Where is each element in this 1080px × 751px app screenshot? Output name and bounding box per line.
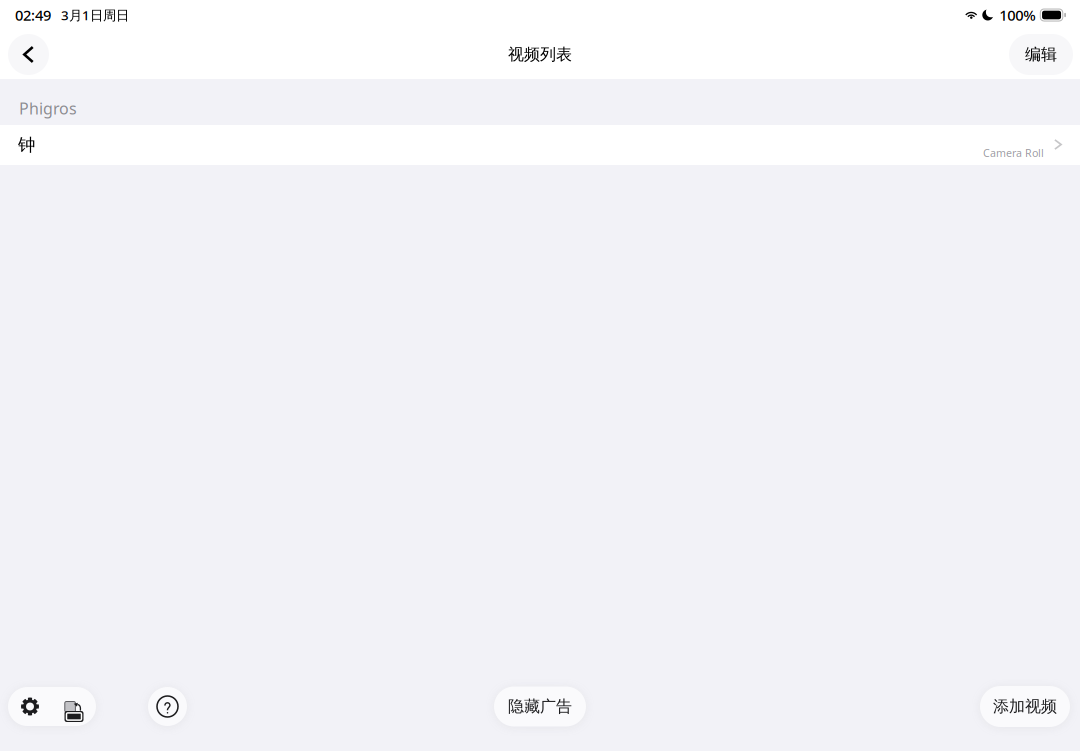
button[interactable]: Help <box>148 687 187 726</box>
button[interactable]: 编辑 <box>1009 34 1073 75</box>
staticText: 视频列表 <box>508 45 572 64</box>
button[interactable]: 钟 <box>0 125 1080 165</box>
staticText: 编辑 <box>1025 45 1057 64</box>
staticText: 添加视频 <box>993 697 1057 716</box>
staticText: 02:49 <box>15 5 51 25</box>
button[interactable]: 隐藏广告 <box>494 686 586 726</box>
staticText: 隐藏广告 <box>508 697 572 716</box>
staticText: 3月1日周日 <box>61 6 129 24</box>
staticText: 钟 <box>18 134 35 156</box>
button[interactable]: Back <box>8 34 49 75</box>
staticText: 100% <box>999 5 1035 25</box>
staticText: Phigros <box>19 98 77 119</box>
button[interactable]: Settings <box>8 687 52 726</box>
staticText: Camera Roll <box>983 146 1044 160</box>
button[interactable]: Save to Camera Roll <box>52 687 96 726</box>
button[interactable]: 添加视频 <box>980 686 1070 727</box>
